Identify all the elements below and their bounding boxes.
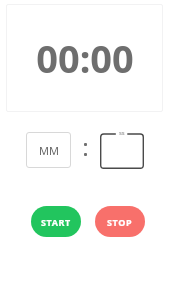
staticText: 00:00 (36, 32, 134, 84)
staticText: START (41, 216, 71, 228)
staticText: MM (39, 143, 59, 158)
button[interactable]: START (31, 206, 81, 237)
button[interactable]: ss (100, 129, 144, 169)
button[interactable]: STOP (95, 206, 145, 237)
button[interactable]: 00:00 (6, 4, 163, 112)
staticText: STOP (107, 216, 133, 228)
button[interactable]: MM (26, 132, 71, 168)
staticText: ss (119, 129, 125, 137)
